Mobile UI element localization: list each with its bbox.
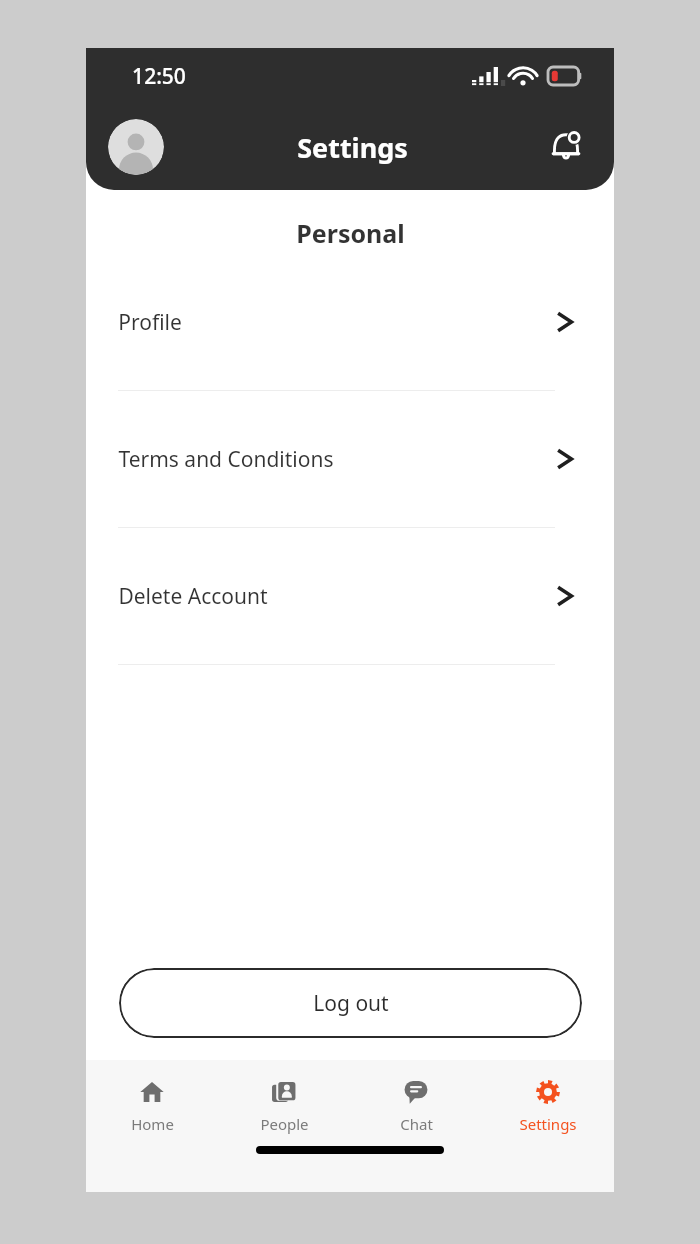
button[interactable]: People (218, 1079, 350, 1134)
staticText: Settings (519, 1114, 577, 1134)
staticText: People (260, 1114, 309, 1134)
staticText: 12:50 (132, 62, 186, 91)
staticText: Delete Account (118, 582, 268, 611)
button[interactable]: Home (86, 1079, 218, 1134)
staticText: Terms and Conditions (118, 445, 334, 474)
staticText: Chat (400, 1114, 433, 1134)
staticText: Personal (296, 216, 405, 250)
button[interactable]: Notifications (540, 121, 592, 173)
staticText: Settings (297, 129, 408, 166)
staticText: Profile (118, 308, 182, 337)
button[interactable]: Profile photo (108, 119, 164, 175)
button[interactable]: Chat (350, 1079, 482, 1134)
button[interactable]: Profile (86, 299, 614, 436)
staticText: Log out (313, 989, 389, 1018)
button[interactable]: Settings (482, 1079, 614, 1134)
button[interactable]: Log out (119, 968, 582, 1038)
button[interactable]: Terms and Conditions (86, 436, 614, 573)
button[interactable]: Delete Account (86, 573, 614, 710)
staticText: Home (131, 1114, 174, 1134)
